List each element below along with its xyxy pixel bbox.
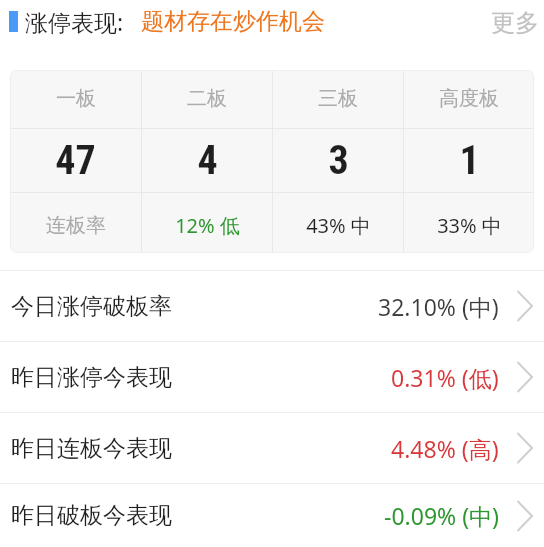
staticText: 0.31% (低): [391, 362, 499, 393]
button[interactable]: 更多: [482, 0, 544, 42]
staticText: 4.48% (高): [391, 433, 499, 464]
staticText: 涨停表现:: [25, 6, 124, 37]
staticText: 43% 中: [306, 212, 371, 239]
staticText: 12% 低: [175, 212, 240, 239]
staticText: 连板率: [46, 213, 106, 238]
button[interactable]: 昨日涨停今表现: [0, 342, 544, 412]
staticText: 47: [55, 137, 96, 184]
staticText: 3: [328, 137, 349, 184]
staticText: 一板: [56, 86, 96, 111]
staticText: 三板: [318, 86, 358, 111]
other: 查看详情: [518, 291, 533, 321]
staticText: 33% 中: [437, 212, 502, 239]
other: 查看详情: [518, 362, 533, 392]
other: 查看详情: [518, 501, 533, 531]
staticText: 更多: [491, 8, 539, 38]
staticText: 高度板: [439, 86, 499, 111]
staticText: 昨日连板今表现: [11, 434, 172, 463]
staticText: 昨日涨停今表现: [11, 363, 172, 392]
button[interactable]: 昨日破板今表现: [0, 484, 544, 547]
staticText: 1: [459, 137, 480, 184]
staticText: 二板: [187, 86, 227, 111]
button[interactable]: 今日涨停破板率: [0, 271, 544, 341]
staticText: 4: [197, 137, 218, 184]
staticText: 32.10% (中): [378, 291, 499, 322]
staticText: 昨日破板今表现: [11, 501, 172, 530]
staticText: 题材存在炒作机会: [141, 7, 325, 36]
staticText: -0.09% (中): [384, 500, 499, 531]
button[interactable]: 昨日连板今表现: [0, 413, 544, 483]
staticText: 今日涨停破板率: [11, 292, 172, 321]
other: 查看详情: [518, 433, 533, 463]
